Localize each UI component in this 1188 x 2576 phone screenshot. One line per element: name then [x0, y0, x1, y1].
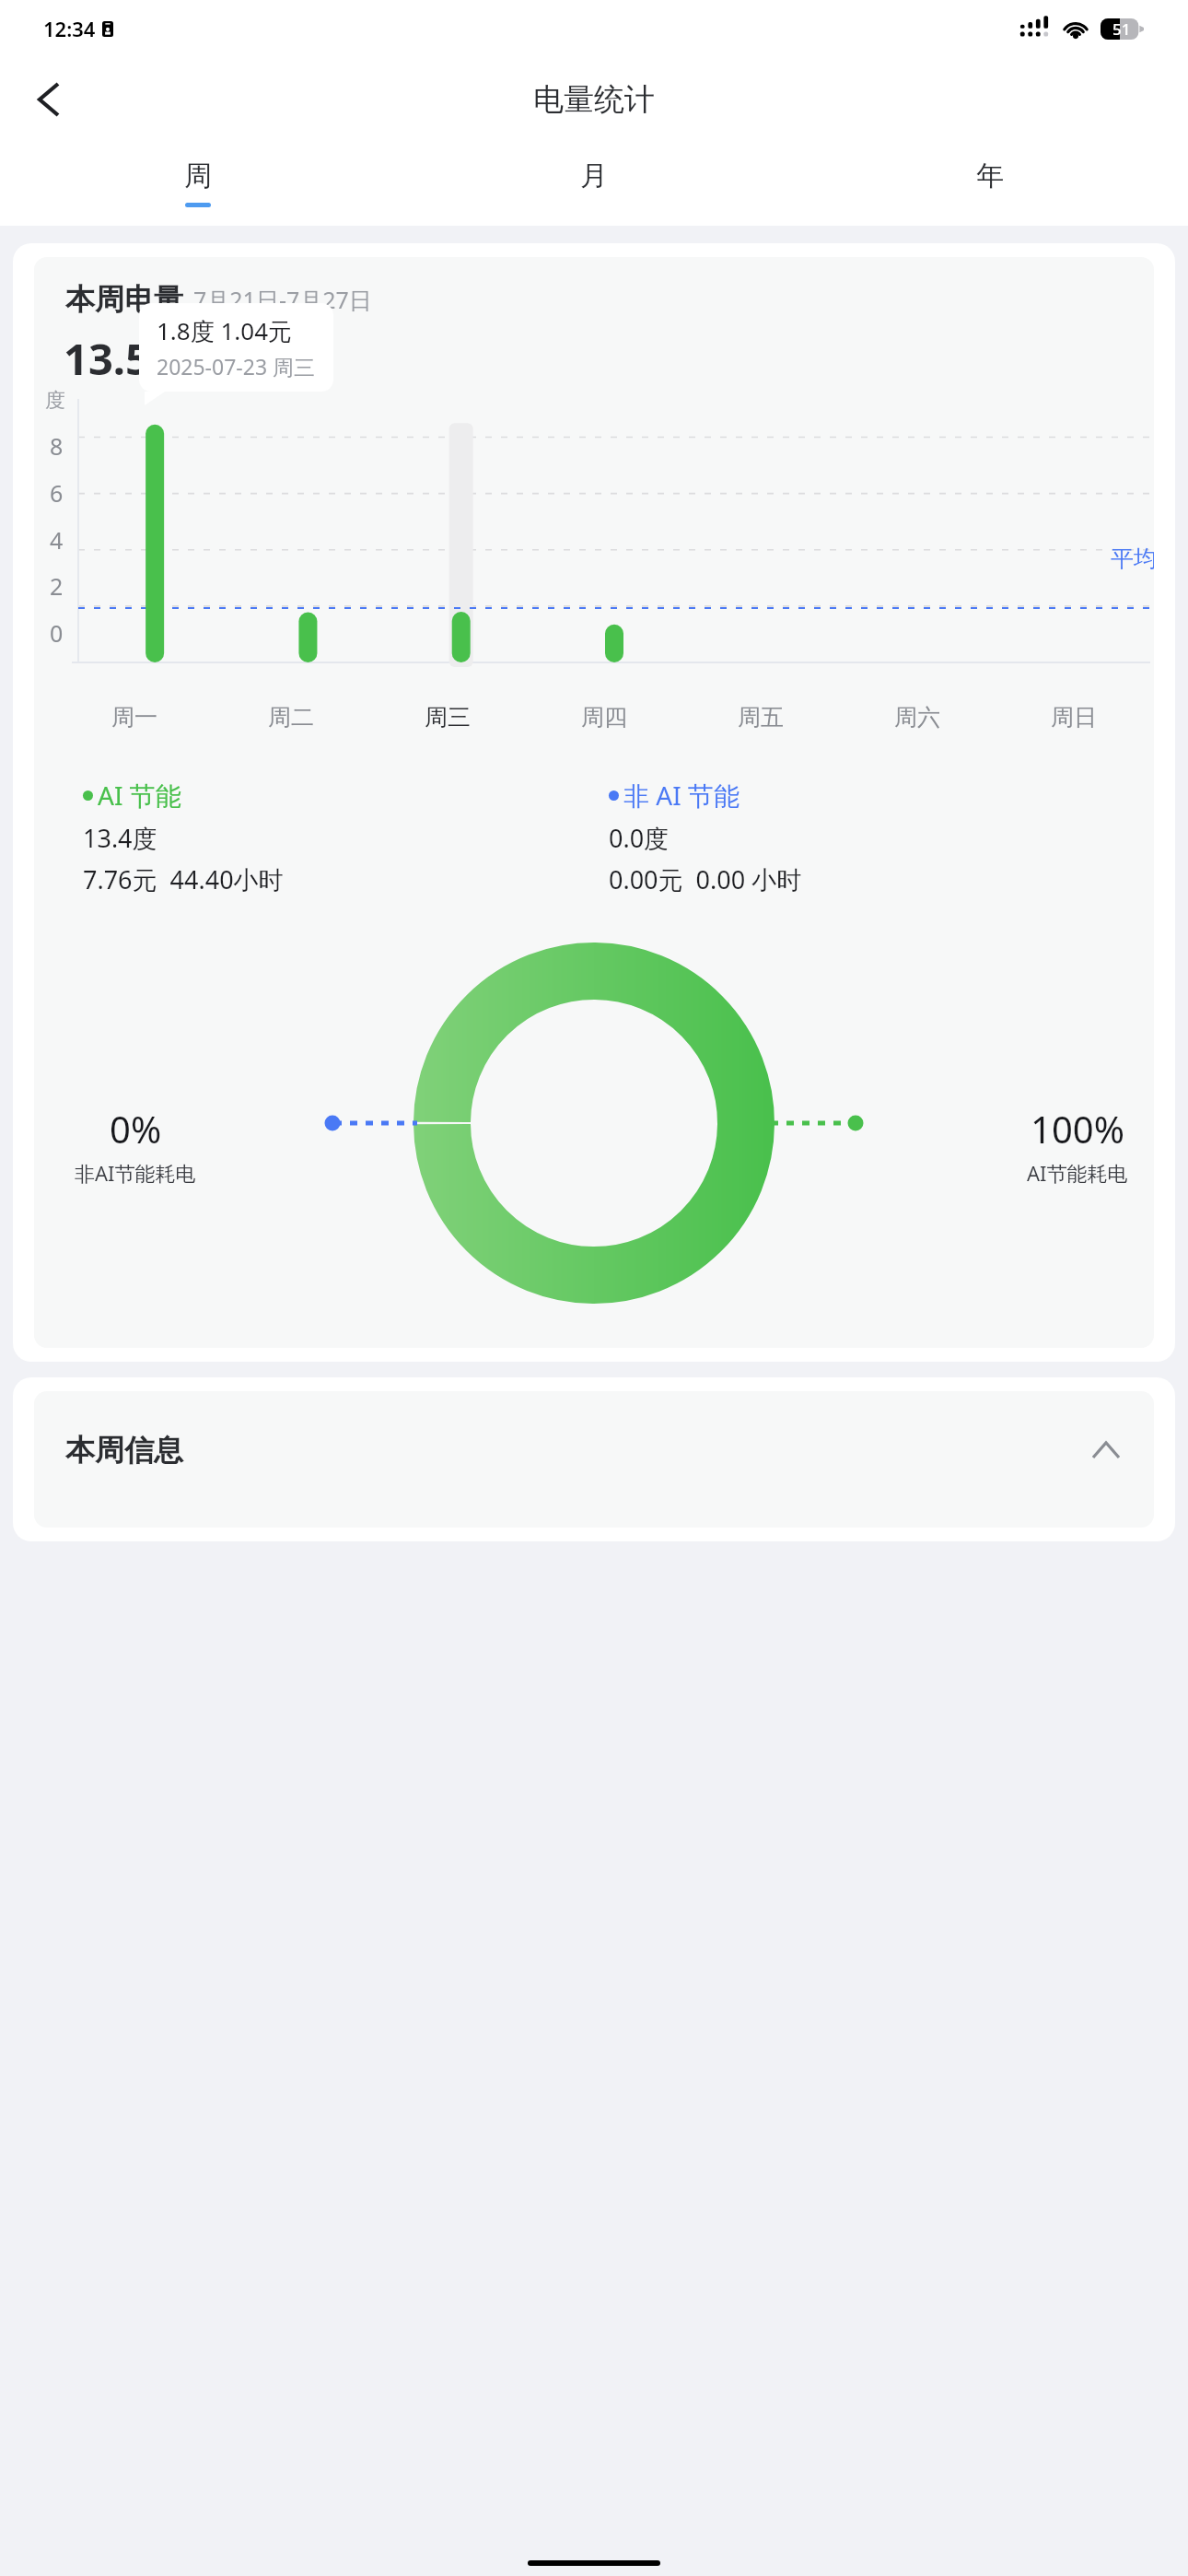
button[interactable]: 年	[792, 142, 1188, 226]
staticText: 13.5	[64, 329, 150, 388]
staticText: 周二	[268, 703, 314, 732]
staticText: 12:34	[43, 15, 96, 42]
staticText: 本周信息	[65, 1432, 183, 1469]
staticText: 度	[154, 357, 175, 384]
staticText: 7月21日-7月27日	[193, 284, 372, 315]
staticText: 周一	[111, 703, 157, 732]
staticText: 0.0度	[609, 821, 670, 855]
staticText: 7.83	[184, 329, 271, 388]
staticText: 13.4度	[83, 821, 157, 855]
other: Collapse	[1086, 1430, 1126, 1470]
staticText: 非AI节能耗电	[75, 1159, 196, 1187]
staticText: 0%	[110, 1104, 162, 1153]
staticText: 周六	[894, 703, 940, 732]
staticText: 100%	[1031, 1104, 1124, 1153]
staticText: 元	[274, 357, 296, 384]
staticText: 8	[50, 430, 64, 462]
staticText: 周	[184, 158, 212, 193]
staticText: 6	[50, 477, 64, 509]
staticText: 周四	[581, 703, 627, 732]
staticText: 月	[580, 158, 608, 193]
staticText: 4	[50, 524, 64, 556]
button[interactable]: Back	[20, 71, 77, 128]
staticText: 平均	[1111, 544, 1154, 573]
staticText: 0	[50, 617, 64, 649]
staticText: 51	[1112, 18, 1131, 40]
staticText: AI节能耗电	[1027, 1159, 1128, 1187]
staticText: 非 AI 节能	[623, 778, 740, 813]
staticText: 7.76元 44.40小时	[83, 862, 284, 896]
button[interactable]: 月	[396, 142, 792, 226]
staticText: 2025-07-23 周三	[157, 352, 316, 381]
staticText: 周三	[425, 703, 471, 732]
staticText: 周日	[1051, 703, 1097, 732]
staticText: 电量统计	[533, 80, 655, 119]
staticText: 2	[50, 570, 64, 602]
staticText: 1.8度 1.04元	[157, 314, 293, 347]
staticText: 年	[976, 158, 1004, 193]
staticText: AI 节能	[98, 778, 181, 813]
staticText: 本周电量	[65, 281, 183, 318]
staticText: 度	[45, 388, 65, 414]
staticText: 周五	[738, 703, 784, 732]
button[interactable]: 本周信息	[34, 1391, 1154, 1528]
staticText: 0.00元 0.00 小时	[609, 862, 802, 896]
button[interactable]: 周	[0, 142, 396, 226]
